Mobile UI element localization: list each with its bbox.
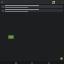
button[interactable] [8, 35, 14, 39]
button[interactable]: Google [52, 1, 55, 4]
button[interactable]: Add [60, 57, 63, 60]
button[interactable]: Menu [1, 1, 3, 3]
button[interactable] [1, 9, 63, 12]
button[interactable] [1, 5, 63, 8]
